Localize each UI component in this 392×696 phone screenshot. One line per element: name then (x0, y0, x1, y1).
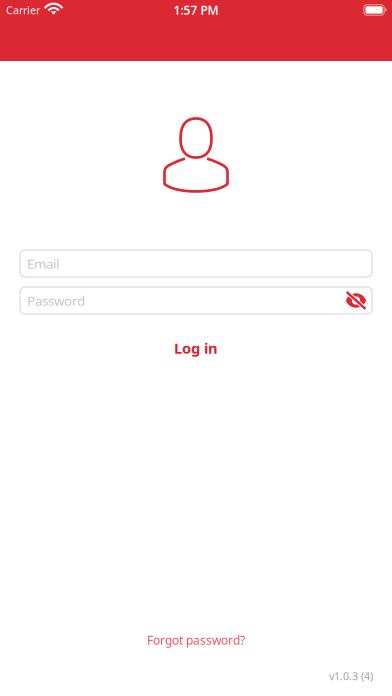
button[interactable]: Forgot password? (20, 629, 372, 651)
staticText: Email (27, 255, 59, 272)
staticText: Forgot password? (147, 632, 245, 648)
button[interactable]: Log in (20, 335, 372, 361)
button[interactable]: Show password (337, 290, 365, 310)
staticText: Password (27, 292, 85, 309)
staticText: v1.0.3 (4) (329, 669, 373, 683)
staticText: Log in (174, 338, 218, 358)
staticText: Carrier (6, 3, 40, 17)
staticText: 1:57 PM (173, 2, 218, 18)
